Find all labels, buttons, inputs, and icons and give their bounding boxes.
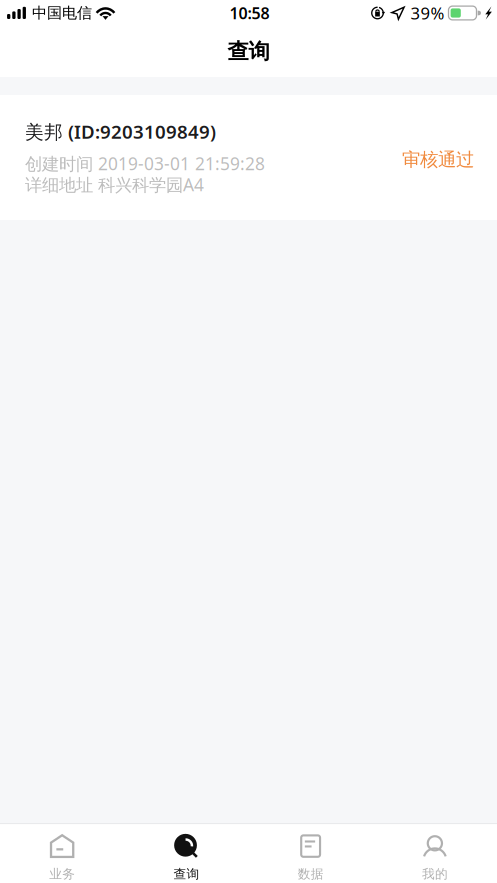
button[interactable]: 数据	[248, 824, 373, 883]
staticText: 查询	[227, 38, 269, 65]
button[interactable]: 业务	[0, 824, 124, 883]
button[interactable]: 我的	[373, 824, 497, 883]
staticText: 创建时间 2019-03-01 21:59:28	[25, 152, 265, 175]
staticText: 中国电信	[32, 3, 92, 22]
staticText: 详细地址 科兴科学园A4	[25, 173, 204, 196]
button[interactable]: 美邦 (ID:9203109849)	[0, 95, 497, 220]
staticText: 美邦 (ID:9203109849)	[25, 119, 216, 144]
staticText: 我的	[422, 866, 448, 882]
staticText: 审核通过	[402, 148, 474, 171]
button[interactable]: 查询	[124, 824, 248, 883]
staticText: 39%	[410, 2, 444, 24]
staticText: 业务	[49, 866, 75, 882]
staticText: 10:58	[229, 2, 269, 24]
staticText: 查询	[173, 866, 199, 882]
staticText: 数据	[298, 866, 324, 882]
